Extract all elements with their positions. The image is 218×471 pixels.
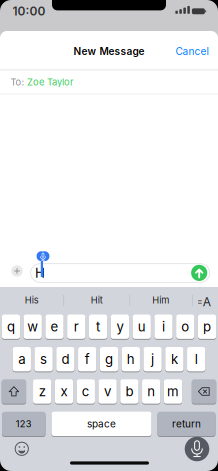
button[interactable]: H xyxy=(30,263,210,283)
button[interactable]: To: xyxy=(0,70,218,93)
button[interactable]: t xyxy=(89,314,107,339)
staticText: v xyxy=(104,383,111,399)
staticText: x xyxy=(60,383,67,399)
button[interactable]: l xyxy=(187,346,205,372)
button[interactable]: w xyxy=(24,314,42,339)
button[interactable]: x xyxy=(55,379,73,404)
staticText: Hit xyxy=(91,295,103,306)
button[interactable]: g xyxy=(100,346,118,372)
staticText: b xyxy=(125,383,133,399)
button[interactable]: Hit xyxy=(67,289,127,311)
button[interactable]: q xyxy=(2,314,20,339)
button[interactable] xyxy=(14,441,30,457)
button[interactable]: i xyxy=(154,314,173,339)
button[interactable]: n xyxy=(142,379,160,404)
staticText: i xyxy=(162,319,165,335)
button[interactable]: a xyxy=(13,346,31,372)
button[interactable]: His xyxy=(2,289,62,311)
button[interactable]: e xyxy=(45,314,64,339)
staticText: d xyxy=(61,351,69,367)
button[interactable]: v xyxy=(98,379,117,404)
staticText: l xyxy=(195,351,198,367)
staticText: k xyxy=(171,351,178,367)
button[interactable]: A xyxy=(192,291,214,313)
button[interactable]: d xyxy=(56,346,75,372)
button[interactable]: s xyxy=(34,346,53,372)
staticText: j xyxy=(151,351,154,367)
staticText: m xyxy=(167,383,179,399)
button[interactable]: r xyxy=(67,314,85,339)
staticText: z xyxy=(39,383,46,399)
staticText: space xyxy=(87,418,116,430)
button[interactable]: return xyxy=(157,411,215,437)
button[interactable]: c xyxy=(77,379,95,404)
staticText: w xyxy=(27,319,38,335)
staticText: o xyxy=(181,319,189,335)
staticText: q xyxy=(7,319,15,335)
staticText: 123 xyxy=(16,418,32,430)
staticText: t xyxy=(96,319,100,335)
staticText: f xyxy=(85,351,90,367)
button[interactable] xyxy=(11,265,23,277)
staticText: Cancel xyxy=(175,45,208,57)
staticText: u xyxy=(138,319,146,335)
staticText: H xyxy=(35,265,45,281)
staticText: p xyxy=(203,319,211,335)
staticText: Him xyxy=(152,295,169,306)
button[interactable]: space xyxy=(51,411,151,437)
staticText: h xyxy=(127,351,135,367)
button[interactable]: k xyxy=(165,346,183,372)
staticText: To: xyxy=(10,76,24,88)
button[interactable] xyxy=(192,379,216,404)
staticText: s xyxy=(40,351,47,367)
button[interactable]: 123 xyxy=(2,411,46,437)
staticText: r xyxy=(74,319,79,335)
button[interactable]: o xyxy=(176,314,194,339)
staticText: y xyxy=(116,319,123,335)
staticText: 10:00 xyxy=(12,4,45,18)
button[interactable] xyxy=(185,437,209,461)
staticText: return xyxy=(172,418,201,430)
button[interactable]: y xyxy=(111,314,129,339)
staticText: His xyxy=(25,295,39,306)
button[interactable] xyxy=(2,379,26,404)
button[interactable]: j xyxy=(143,346,162,372)
staticText: a xyxy=(18,351,25,367)
staticText: g xyxy=(105,351,113,367)
staticText: New Message xyxy=(73,45,144,57)
button[interactable]: b xyxy=(120,379,138,404)
button[interactable]: f xyxy=(78,346,96,372)
button[interactable]: p xyxy=(198,314,216,339)
staticText: A xyxy=(203,295,211,309)
staticText: Zoe Taylor xyxy=(27,76,74,88)
button[interactable]: h xyxy=(122,346,140,372)
button[interactable]: Him xyxy=(132,289,190,311)
staticText: e xyxy=(50,319,58,335)
staticText: n xyxy=(147,383,155,399)
button[interactable]: u xyxy=(133,314,151,339)
button[interactable]: m xyxy=(164,379,182,404)
button[interactable]: z xyxy=(33,379,51,404)
button[interactable] xyxy=(191,265,207,281)
staticText: c xyxy=(82,383,90,399)
button[interactable]: Cancel xyxy=(172,41,212,61)
